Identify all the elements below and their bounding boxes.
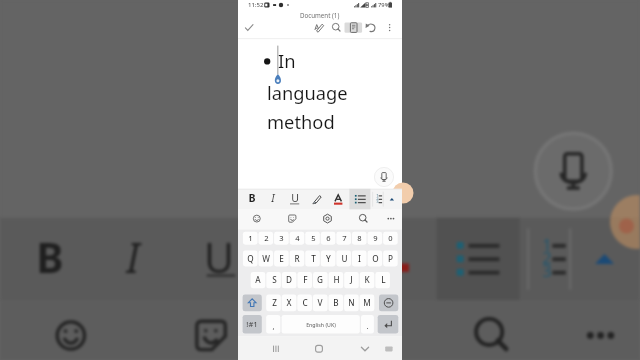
staticText: ,	[272, 321, 275, 331]
staticText: 2	[264, 233, 269, 243]
staticText: R	[294, 253, 300, 264]
staticText: D	[286, 274, 292, 285]
staticText: A	[255, 274, 261, 285]
staticText: B	[333, 297, 339, 308]
staticText: N	[348, 297, 355, 308]
staticText: B	[248, 191, 256, 205]
staticText: 8	[357, 233, 362, 243]
staticText: U	[291, 191, 299, 205]
staticText: Q	[247, 253, 254, 264]
staticText: 2	[542, 246, 552, 268]
staticText: In	[278, 48, 296, 73]
staticText: T	[311, 253, 316, 264]
staticText: 6	[326, 233, 331, 243]
staticText: English (UK)	[306, 321, 336, 328]
staticText: E	[279, 253, 284, 264]
staticText: V	[317, 297, 323, 308]
staticText: U	[204, 229, 234, 285]
staticText: .	[366, 321, 369, 331]
staticText: !#1	[246, 319, 258, 329]
staticText: U	[341, 253, 348, 264]
staticText: 7	[342, 233, 347, 243]
staticText: 1	[376, 193, 379, 199]
staticText: 9	[373, 233, 378, 243]
staticText: X	[286, 297, 292, 308]
staticText: I	[271, 191, 275, 205]
staticText: C	[302, 297, 308, 308]
staticText: F	[303, 274, 308, 285]
staticText: method	[267, 109, 335, 134]
staticText: K	[364, 274, 370, 285]
staticText: L	[381, 274, 386, 285]
staticText: P	[388, 253, 393, 264]
staticText: 3	[376, 199, 379, 205]
staticText: 79%	[378, 1, 390, 9]
staticText: 4	[295, 233, 300, 243]
staticText: B	[36, 229, 64, 285]
staticText: 3	[279, 233, 284, 243]
staticText: S	[272, 274, 277, 285]
staticText: Z	[272, 297, 277, 308]
staticText: language	[267, 80, 348, 105]
staticText: W	[262, 253, 270, 264]
staticText: 1	[542, 233, 552, 255]
staticText: 1	[248, 233, 253, 243]
staticText: H	[333, 274, 340, 285]
staticText: Document (1)	[300, 11, 340, 19]
staticText: 3	[542, 259, 552, 281]
staticText: Y	[326, 253, 331, 264]
staticText: J	[350, 274, 353, 285]
staticText: G	[317, 274, 323, 285]
staticText: M	[363, 297, 371, 308]
staticText: 2	[376, 196, 379, 202]
staticText: I	[126, 229, 140, 285]
staticText: 11:52	[248, 1, 264, 9]
staticText: O	[372, 253, 379, 264]
staticText: 0	[388, 233, 393, 243]
staticText: I	[358, 253, 361, 264]
staticText: 5	[311, 233, 316, 243]
